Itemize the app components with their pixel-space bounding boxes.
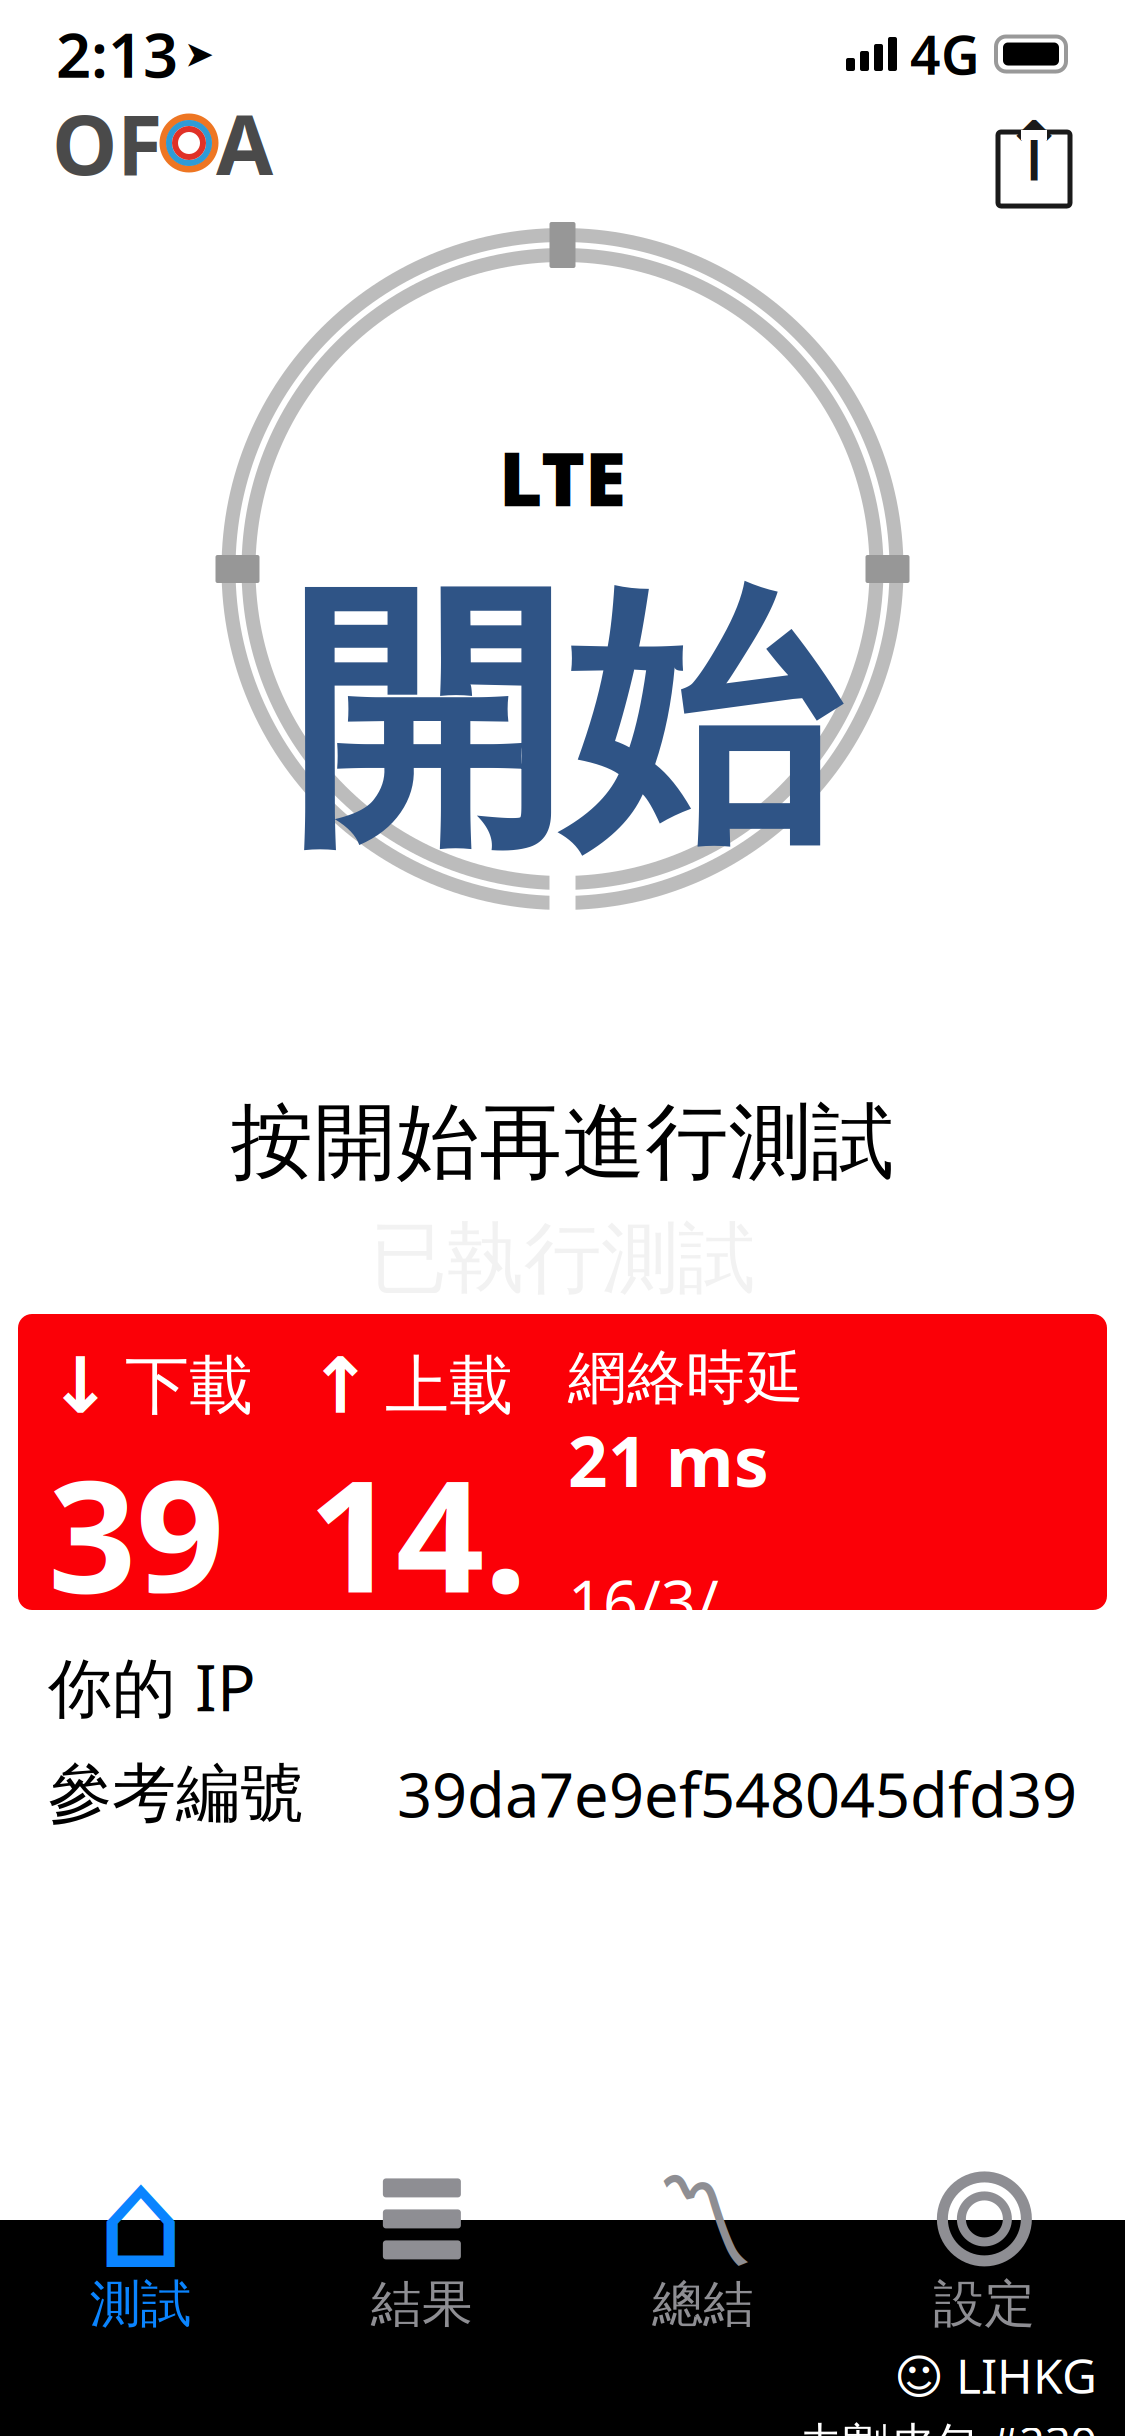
- staticText: OF: [52, 88, 162, 198]
- staticText: 測試: [90, 2273, 192, 2335]
- staticText: 下午2:13:17: [568, 1725, 705, 1963]
- button[interactable]: 開始: [287, 527, 837, 890]
- staticText: 2:13: [56, 13, 178, 95]
- staticText: ↑: [999, 105, 1068, 199]
- staticText: ↑: [308, 1342, 373, 1430]
- button[interactable]: 設定: [844, 2173, 1125, 2335]
- staticText: 去割皮包 #239: [798, 2413, 1097, 2436]
- staticText: 開始: [287, 553, 837, 890]
- button[interactable]: 〽: [562, 2173, 844, 2335]
- staticText: 結果: [371, 2273, 473, 2335]
- button[interactable]: 結果: [281, 2173, 562, 2335]
- staticText: 已執行測試: [370, 1211, 755, 1306]
- button[interactable]: 分享: [995, 106, 1073, 206]
- staticText: 上載: [385, 1347, 513, 1425]
- staticText: 按開始再進行測試: [230, 1092, 894, 1193]
- staticText: 下載: [125, 1347, 253, 1425]
- staticText: 16/3/2020: [568, 1560, 719, 1723]
- staticText: 14.1: [308, 1430, 527, 1841]
- staticText: ⌂: [97, 2140, 185, 2298]
- staticText: 網絡時延: [568, 1342, 804, 1414]
- staticText: 〽: [651, 2168, 755, 2270]
- button[interactable]: ⌂: [0, 2173, 281, 2335]
- staticText: A: [216, 88, 273, 198]
- staticText: 總結: [652, 2273, 754, 2335]
- staticText: LTE: [499, 428, 626, 527]
- staticText: 21 ms: [568, 1414, 769, 1506]
- staticText: ↓: [48, 1342, 113, 1430]
- staticText: 你的 IP: [48, 1644, 256, 1729]
- staticText: 39da7e9ef548045dfd39: [397, 1753, 1077, 1834]
- staticText: 參考編號: [48, 1754, 304, 1833]
- staticText: 設定: [933, 2273, 1035, 2335]
- staticText: 392: [48, 1430, 224, 1841]
- staticText: ☺ LIHKG: [894, 2343, 1097, 2407]
- staticText: 4G: [910, 19, 980, 89]
- staticText: ➤: [184, 34, 214, 74]
